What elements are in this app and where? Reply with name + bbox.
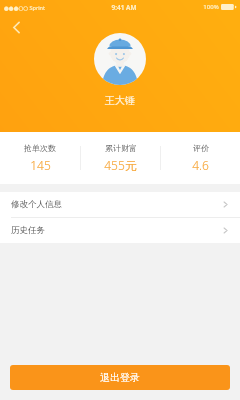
staticText: 累计财富 [105, 143, 137, 153]
staticText: 100% [203, 3, 219, 11]
button[interactable]: Back [5, 16, 27, 38]
button[interactable]: Profile avatar [94, 33, 146, 85]
button[interactable]: 评价 [161, 132, 240, 184]
staticText: 修改个人信息 [11, 199, 62, 210]
staticText: 退出登录 [100, 371, 140, 384]
staticText: ●●●○○ Sprint [4, 4, 45, 11]
button[interactable]: 历史任务 [0, 218, 240, 243]
button[interactable]: 修改个人信息 [0, 192, 240, 217]
button[interactable]: 退出登录 [10, 365, 230, 390]
staticText: 4.6 [192, 157, 209, 173]
staticText: 王大锤 [105, 94, 135, 107]
button[interactable]: 累计财富 [81, 132, 160, 184]
button[interactable]: 抢单次数 [0, 132, 80, 184]
staticText: 9:41 AM [111, 3, 137, 12]
staticText: 历史任务 [11, 225, 45, 236]
staticText: 145 [30, 157, 51, 173]
staticText: 455元 [104, 157, 137, 173]
staticText: 评价 [193, 143, 209, 153]
staticText: 抢单次数 [24, 143, 56, 153]
